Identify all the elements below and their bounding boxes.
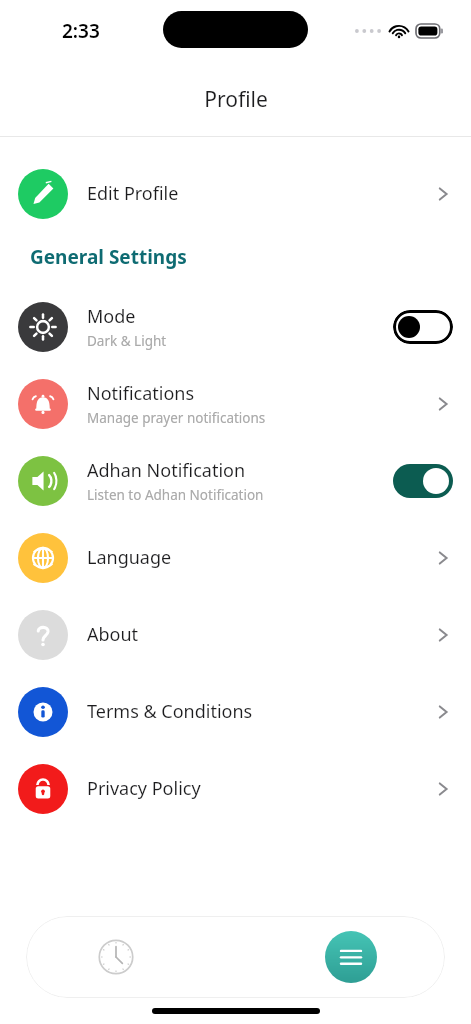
other: Open Terms & Conditions [433,702,453,722]
staticText: Privacy Policy [87,776,201,801]
staticText: General Settings [30,244,187,270]
button[interactable]: About [0,596,471,673]
staticText: Listen to Adhan Notification [87,486,264,504]
staticText: Manage prayer notifications [87,409,266,427]
staticText: Edit Profile [87,181,179,206]
staticText: 2:33 [62,18,100,44]
staticText: About [87,622,139,647]
other: Open Notifications [433,394,453,414]
other: Open Edit Profile [433,184,453,204]
other: Open Privacy Policy [433,779,453,799]
button[interactable]: Adhan Notification [0,442,471,519]
button[interactable]: Mode [0,288,471,365]
staticText: Dark & Light [87,332,167,350]
staticText: Terms & Conditions [87,699,253,724]
button[interactable]: Notifications [0,365,471,442]
other: Open About [433,625,453,645]
staticText: Adhan Notification [87,458,246,483]
button[interactable]: Edit Profile [0,155,471,232]
staticText: Mode [87,304,136,329]
staticText: Notifications [87,381,195,406]
button[interactable]: Mode toggle off [393,310,453,344]
button[interactable]: Terms & Conditions [0,673,471,750]
button[interactable]: Privacy Policy [0,750,471,827]
staticText: Profile [204,85,268,114]
button[interactable]: Menu [325,931,377,983]
button[interactable]: Adhan Notification toggle on [393,464,453,498]
other: Open Language [433,548,453,568]
staticText: Language [87,545,172,570]
button[interactable]: Prayer times [88,929,144,985]
button[interactable]: Language [0,519,471,596]
